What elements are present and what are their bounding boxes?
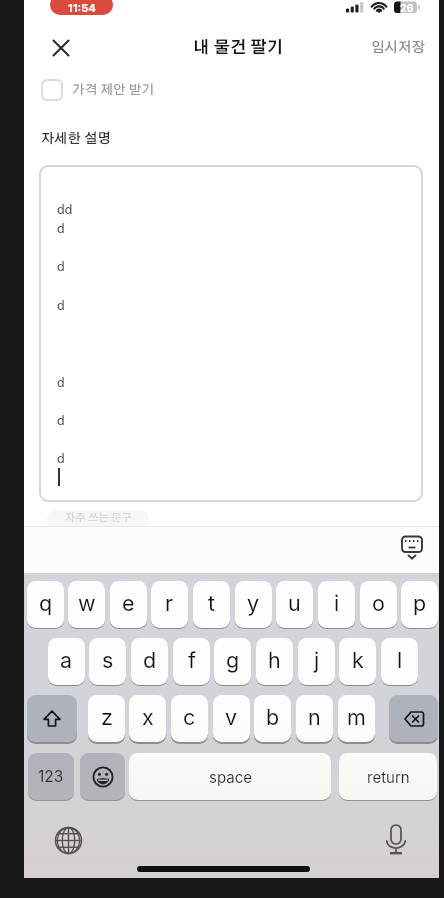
staticText: dd: [57, 204, 73, 217]
button[interactable]: space: [129, 753, 331, 800]
button[interactable]: [27, 695, 77, 742]
staticText: d: [57, 415, 65, 428]
button[interactable]: 임시저장: [350, 36, 426, 60]
button[interactable]: d: [131, 638, 168, 685]
staticText: x: [142, 704, 154, 730]
button[interactable]: u: [276, 581, 313, 628]
staticText: p: [413, 590, 427, 616]
staticText: return: [367, 768, 410, 786]
button[interactable]: 123: [28, 753, 74, 800]
button[interactable]: p: [401, 581, 438, 628]
staticText: j: [314, 647, 320, 673]
button[interactable]: a: [48, 638, 85, 685]
staticText: 가격 제안 받기: [72, 84, 155, 97]
staticText: q: [39, 590, 53, 616]
staticText: t: [208, 590, 216, 616]
button[interactable]: k: [339, 638, 376, 685]
staticText: w: [78, 590, 96, 616]
button[interactable]: n: [296, 695, 333, 742]
staticText: d: [57, 377, 65, 390]
button[interactable]: b: [254, 695, 291, 742]
staticText: 123: [38, 767, 64, 786]
staticText: 26: [400, 2, 414, 15]
staticText: d: [57, 453, 65, 466]
button[interactable]: 가격 제안 받기: [41, 79, 155, 101]
button[interactable]: g: [214, 638, 251, 685]
button[interactable]: [80, 753, 125, 800]
staticText: h: [268, 647, 281, 673]
button[interactable]: f: [173, 638, 210, 685]
staticText: 자주 쓰는 문구: [65, 513, 132, 524]
staticText: 자세한 설명: [41, 132, 111, 146]
button[interactable]: x: [129, 695, 166, 742]
staticText: 11:54: [68, 1, 96, 14]
button[interactable]: j: [298, 638, 335, 685]
staticText: n: [308, 704, 321, 730]
staticText: d: [57, 261, 65, 274]
button[interactable]: s: [89, 638, 126, 685]
staticText: r: [165, 590, 174, 616]
staticText: a: [60, 647, 73, 673]
staticText: g: [226, 647, 240, 673]
button[interactable]: e: [110, 581, 147, 628]
button[interactable]: [51, 38, 71, 58]
staticText: v: [225, 704, 238, 730]
staticText: d: [57, 223, 65, 236]
button[interactable]: [380, 823, 412, 857]
button[interactable]: [54, 826, 83, 855]
staticText: e: [122, 590, 135, 616]
staticText: d: [143, 647, 157, 673]
button[interactable]: w: [68, 581, 105, 628]
button[interactable]: [389, 695, 438, 742]
staticText: z: [101, 704, 113, 730]
staticText: f: [188, 647, 196, 673]
staticText: s: [102, 647, 114, 673]
button[interactable]: return: [339, 753, 437, 800]
staticText: u: [288, 590, 301, 616]
button[interactable]: h: [256, 638, 293, 685]
staticText: c: [183, 704, 196, 730]
button[interactable]: o: [360, 581, 397, 628]
button[interactable]: y: [235, 581, 272, 628]
staticText: o: [372, 590, 385, 616]
staticText: y: [247, 590, 260, 616]
button[interactable]: i: [318, 581, 355, 628]
button[interactable]: [400, 535, 424, 561]
button[interactable]: m: [338, 695, 375, 742]
staticText: m: [347, 704, 366, 730]
button[interactable]: z: [88, 695, 125, 742]
staticText: k: [352, 647, 364, 673]
button[interactable]: t: [193, 581, 230, 628]
button[interactable]: l: [381, 638, 418, 685]
button[interactable]: c: [171, 695, 208, 742]
button[interactable]: v: [213, 695, 250, 742]
staticText: d: [57, 300, 65, 313]
staticText: i: [334, 590, 340, 616]
staticText: space: [209, 768, 252, 786]
staticText: 임시저장: [371, 41, 426, 55]
button[interactable]: r: [151, 581, 188, 628]
staticText: l: [397, 647, 403, 673]
staticText: 내 물건 팔기: [193, 40, 284, 57]
button[interactable]: q: [27, 581, 64, 628]
staticText: b: [266, 704, 280, 730]
